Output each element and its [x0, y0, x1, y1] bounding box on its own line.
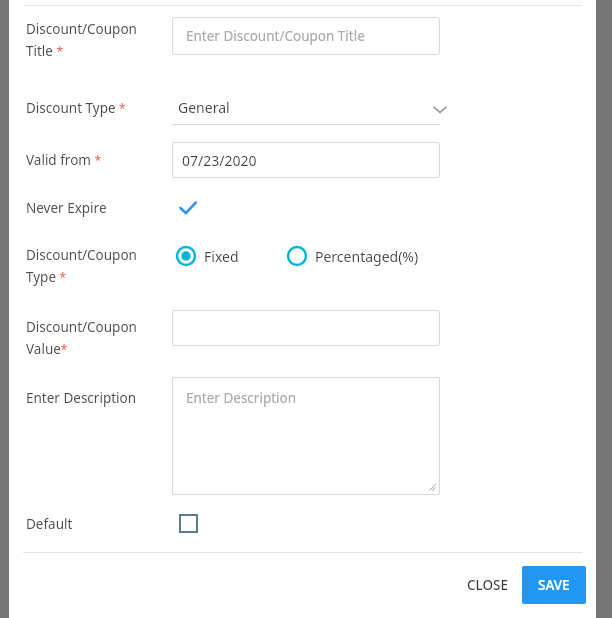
button[interactable] [172, 310, 440, 346]
button[interactable]: Enter Description [172, 377, 440, 495]
staticText: Valid from * [26, 151, 102, 169]
button[interactable]: 07/23/2020 [172, 142, 440, 178]
staticText: Discount Type * [26, 99, 126, 117]
staticText: Percentaged(%) [315, 247, 419, 266]
staticText: Discount/Coupon [26, 246, 137, 264]
staticText: 07/23/2020 [182, 151, 257, 170]
button[interactable]: SAVE [522, 566, 586, 604]
staticText: Discount/Coupon [26, 318, 137, 336]
button[interactable]: CLOSE [455, 566, 521, 604]
staticText: Fixed [204, 247, 239, 266]
button[interactable]: General [172, 92, 440, 125]
staticText: Title * [26, 42, 64, 60]
staticText: CLOSE [467, 576, 509, 594]
staticText: Never Expire [26, 199, 107, 217]
staticText: Default [26, 515, 73, 533]
button[interactable]: Default [170, 505, 206, 541]
button[interactable]: Percentaged(%) [283, 242, 419, 270]
button[interactable]: Enter Discount/Coupon Title [172, 17, 440, 55]
staticText: Value* [26, 340, 68, 358]
staticText: General [178, 98, 230, 117]
staticText: Enter Description [26, 389, 137, 407]
staticText: Type * [26, 268, 67, 286]
staticText: Discount/Coupon [26, 20, 137, 38]
staticText: Enter Discount/Coupon Title [186, 27, 365, 45]
button[interactable]: Fixed [172, 242, 239, 270]
button[interactable]: Never Expire checked [172, 192, 204, 224]
staticText: Enter Description [186, 389, 297, 407]
staticText: SAVE [538, 576, 570, 594]
